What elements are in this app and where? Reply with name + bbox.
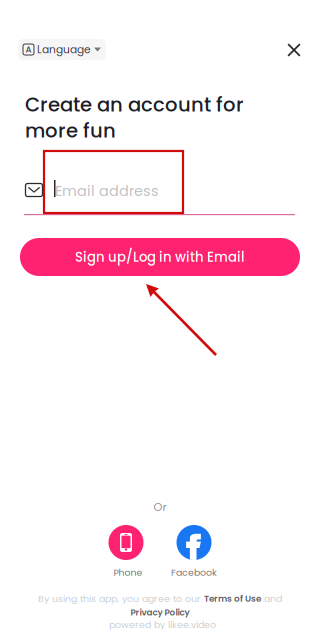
staticText: Sign up/Log in with Email	[75, 248, 245, 266]
staticText: Phone	[113, 566, 142, 579]
staticText: Facebook	[171, 566, 217, 579]
staticText: A	[25, 43, 31, 55]
button[interactable]: Phone	[92, 525, 160, 579]
staticText: powered by likee.video	[109, 618, 216, 631]
staticText: By using this app, you agree to our	[38, 592, 204, 605]
staticText: Create an account for	[25, 91, 244, 118]
button[interactable]: Terms of Use	[204, 592, 261, 605]
button[interactable]: A	[18, 39, 106, 60]
staticText: and	[261, 592, 282, 605]
staticText: more fun	[25, 117, 116, 144]
staticText: Language	[37, 42, 91, 57]
button[interactable]: Privacy Policy	[130, 606, 189, 619]
staticText: Privacy Policy	[130, 606, 189, 619]
staticText: Or	[153, 499, 166, 515]
button[interactable]: Sign up/Log in with Email	[20, 238, 300, 276]
staticText: Email address	[55, 181, 159, 201]
button[interactable]: Facebook	[160, 525, 228, 579]
button[interactable]: Close	[281, 37, 307, 63]
staticText: Terms of Use	[204, 592, 261, 605]
